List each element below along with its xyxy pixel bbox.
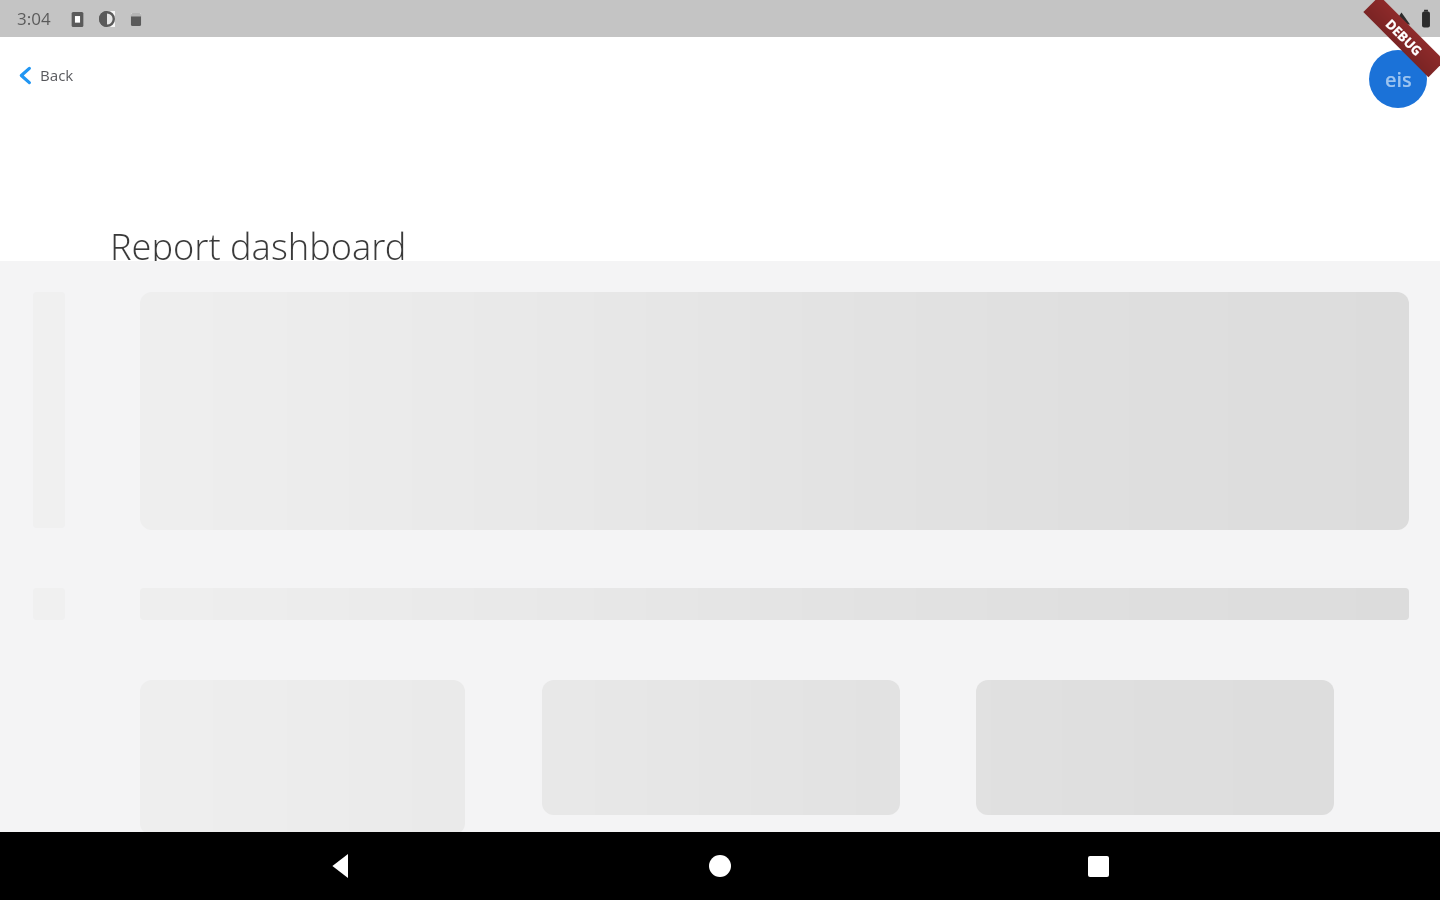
staticText: 3:04 xyxy=(17,7,51,30)
button[interactable]: Home xyxy=(684,832,756,900)
staticText: eis xyxy=(1385,66,1412,93)
button[interactable]: Recent apps xyxy=(1062,832,1134,900)
staticText: DEBUG xyxy=(1382,15,1426,59)
staticText: Report dashboard xyxy=(110,222,407,261)
button[interactable]: Back xyxy=(10,57,84,93)
button[interactable]: Back xyxy=(306,832,378,900)
staticText: Back xyxy=(40,65,74,85)
button[interactable]: Account xyxy=(1369,50,1427,108)
